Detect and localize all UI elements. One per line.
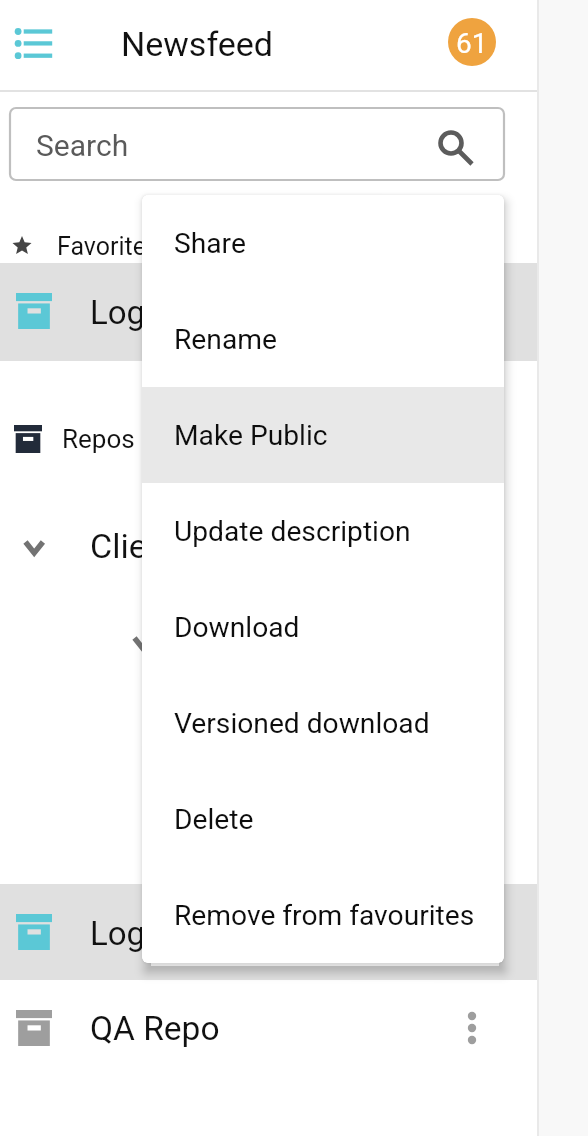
button[interactable]: Collapse Clients: [0, 496, 537, 596]
button[interactable]: Repos: [0, 385, 537, 485]
button[interactable]: Update description: [142, 483, 504, 579]
button[interactable]: QA Repo: [0, 978, 537, 1078]
staticText: 61: [456, 27, 488, 60]
button[interactable]: Logs: [0, 884, 537, 980]
other: Collapse Clients: [22, 537, 48, 559]
staticText: Delete: [174, 803, 254, 836]
staticText: Logs: [90, 293, 163, 332]
button[interactable]: Make Public: [142, 387, 504, 483]
staticText: Search: [36, 128, 129, 163]
staticText: Versioned download: [174, 707, 430, 740]
button[interactable]: Download: [142, 579, 504, 675]
staticText: Repos: [62, 424, 135, 454]
staticText: Update description: [174, 515, 411, 548]
button[interactable]: More options: [448, 1004, 496, 1052]
staticText: Share: [174, 227, 246, 260]
staticText: Download: [174, 611, 300, 644]
button[interactable]: Versioned download: [142, 675, 504, 771]
staticText: Remove from favourites: [174, 899, 475, 932]
staticText: Make Public: [174, 419, 328, 452]
button[interactable]: Rename: [142, 291, 504, 387]
other: Expand group: [131, 633, 157, 655]
staticText: Favorites: [57, 232, 159, 261]
button[interactable]: Notifications: 61: [448, 18, 496, 66]
staticText: Logs: [90, 914, 163, 953]
button[interactable]: Remove from favourites: [142, 867, 504, 963]
staticText: Newsfeed: [121, 24, 274, 64]
other: Search: [428, 122, 480, 174]
staticText: Rename: [174, 323, 277, 356]
button[interactable]: Logs: [0, 263, 537, 361]
button[interactable]: Search: [10, 108, 504, 180]
staticText: Clients: [90, 526, 195, 566]
button[interactable]: Share: [142, 195, 504, 291]
button[interactable]: Delete: [142, 771, 504, 867]
staticText: QA Repo: [90, 1009, 220, 1048]
button[interactable]: Favorites: [0, 190, 537, 263]
button[interactable]: Open navigation menu: [3, 14, 63, 74]
button[interactable]: Expand group: [0, 596, 537, 696]
staticText: Design: [201, 626, 306, 666]
